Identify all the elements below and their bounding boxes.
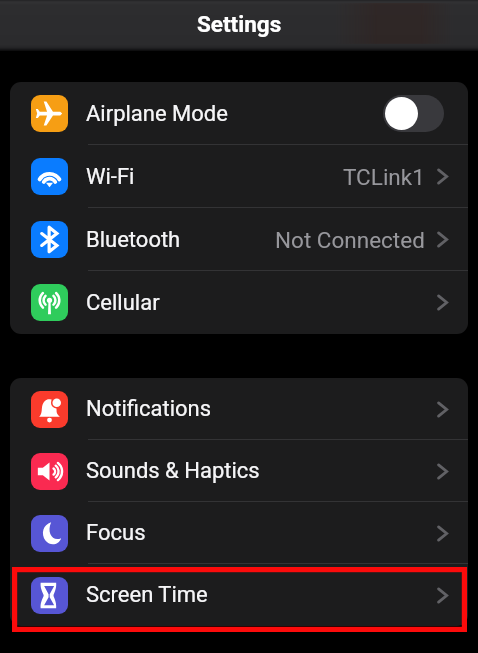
staticText: TCLink1 — [343, 164, 425, 190]
button[interactable]: Notifications — [10, 378, 468, 440]
button[interactable]: Airplane Mode toggle — [383, 95, 444, 132]
staticText: Wi-Fi — [86, 164, 135, 190]
staticText: Notifications — [86, 396, 212, 422]
button[interactable]: Cellular — [10, 271, 468, 334]
button[interactable]: Screen Time — [10, 564, 468, 626]
button[interactable]: Airplane Mode — [10, 82, 468, 145]
button[interactable]: Sounds & Haptics — [10, 440, 468, 502]
staticText: Settings — [197, 11, 282, 37]
button[interactable]: Wi-Fi — [10, 145, 468, 208]
staticText: Cellular — [86, 290, 160, 316]
staticText: Screen Time — [86, 582, 208, 608]
staticText: Focus — [86, 520, 146, 546]
staticText: Sounds & Haptics — [86, 458, 260, 484]
staticText: Bluetooth — [86, 227, 181, 253]
staticText: Airplane Mode — [86, 101, 228, 127]
staticText: Not Connected — [275, 227, 425, 253]
button[interactable]: Focus — [10, 502, 468, 564]
button[interactable]: Bluetooth — [10, 208, 468, 271]
